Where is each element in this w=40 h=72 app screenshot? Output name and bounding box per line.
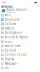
staticText: Display xyxy=(5,57,14,61)
staticText: Wallpaper xyxy=(5,62,18,65)
button[interactable]: Cellular xyxy=(0,22,40,26)
staticText: Siri xyxy=(5,66,9,70)
staticText: Sounds & Haptics xyxy=(5,35,28,39)
button[interactable]: Display xyxy=(0,57,40,61)
staticText: Control Centre xyxy=(5,53,27,56)
button[interactable]: Sounds & Haptics xyxy=(0,35,40,39)
staticText: Bluetooth xyxy=(5,18,20,21)
staticText: Battery xyxy=(5,27,14,30)
staticText: Settings xyxy=(1,5,12,8)
staticText: Notifications xyxy=(5,31,22,34)
staticText: Apple Account xyxy=(6,8,27,11)
staticText: Cellular xyxy=(5,22,16,26)
button[interactable]: General xyxy=(0,48,40,53)
button[interactable]: Screen Time xyxy=(0,44,40,48)
staticText: General xyxy=(5,49,16,52)
button[interactable]: Bluetooth xyxy=(0,17,40,22)
button[interactable]: Wallpaper xyxy=(0,61,40,66)
button[interactable]: Focus xyxy=(0,39,40,44)
staticText: Screen Time xyxy=(5,44,21,48)
staticText: Wi-Fi xyxy=(5,13,11,17)
staticText: 9:41 xyxy=(3,2,6,3)
button[interactable]: Control Centre xyxy=(0,53,40,57)
staticText: Apple ID, iCloud xyxy=(6,12,15,13)
button[interactable]: Apple Account xyxy=(0,8,40,13)
button[interactable]: Siri xyxy=(0,66,40,70)
button[interactable]: Battery xyxy=(0,26,40,31)
staticText: Focus xyxy=(5,40,12,43)
button[interactable]: Notifications xyxy=(0,31,40,35)
button[interactable]: Wi-Fi xyxy=(0,13,40,17)
